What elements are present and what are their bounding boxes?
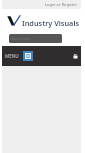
staticText: MENU bbox=[5, 53, 19, 59]
button[interactable]: Search here bbox=[9, 34, 62, 43]
button[interactable]: Cart bbox=[73, 54, 78, 59]
button[interactable]: Open menu bbox=[23, 51, 33, 61]
button[interactable]: Login or Register bbox=[45, 2, 81, 7]
staticText: Search here bbox=[11, 36, 31, 41]
button[interactable]: MENU bbox=[5, 53, 19, 59]
staticText: Industry Visuals bbox=[22, 18, 80, 28]
staticText: Login or Register bbox=[45, 2, 78, 7]
